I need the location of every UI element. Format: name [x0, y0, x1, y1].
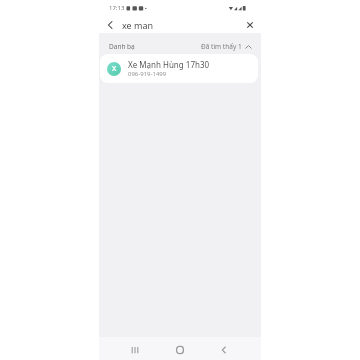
staticText: X: [112, 64, 117, 74]
button[interactable]: [127, 342, 143, 358]
button[interactable]: Đã tìm thấy 1: [201, 42, 252, 51]
button[interactable]: [172, 342, 188, 358]
button[interactable]: [243, 18, 257, 32]
staticText: 096-919-1499: [128, 70, 167, 78]
button[interactable]: X: [100, 54, 258, 83]
staticText: Danh bạ: [109, 42, 135, 51]
button[interactable]: [103, 18, 117, 32]
staticText: Đã tìm thấy 1: [201, 42, 242, 51]
button[interactable]: [216, 342, 232, 358]
staticText: xe man: [122, 19, 154, 31]
staticText: 17:13: [109, 4, 125, 12]
staticText: Xe Mạnh Hùng 17h30: [128, 59, 210, 70]
